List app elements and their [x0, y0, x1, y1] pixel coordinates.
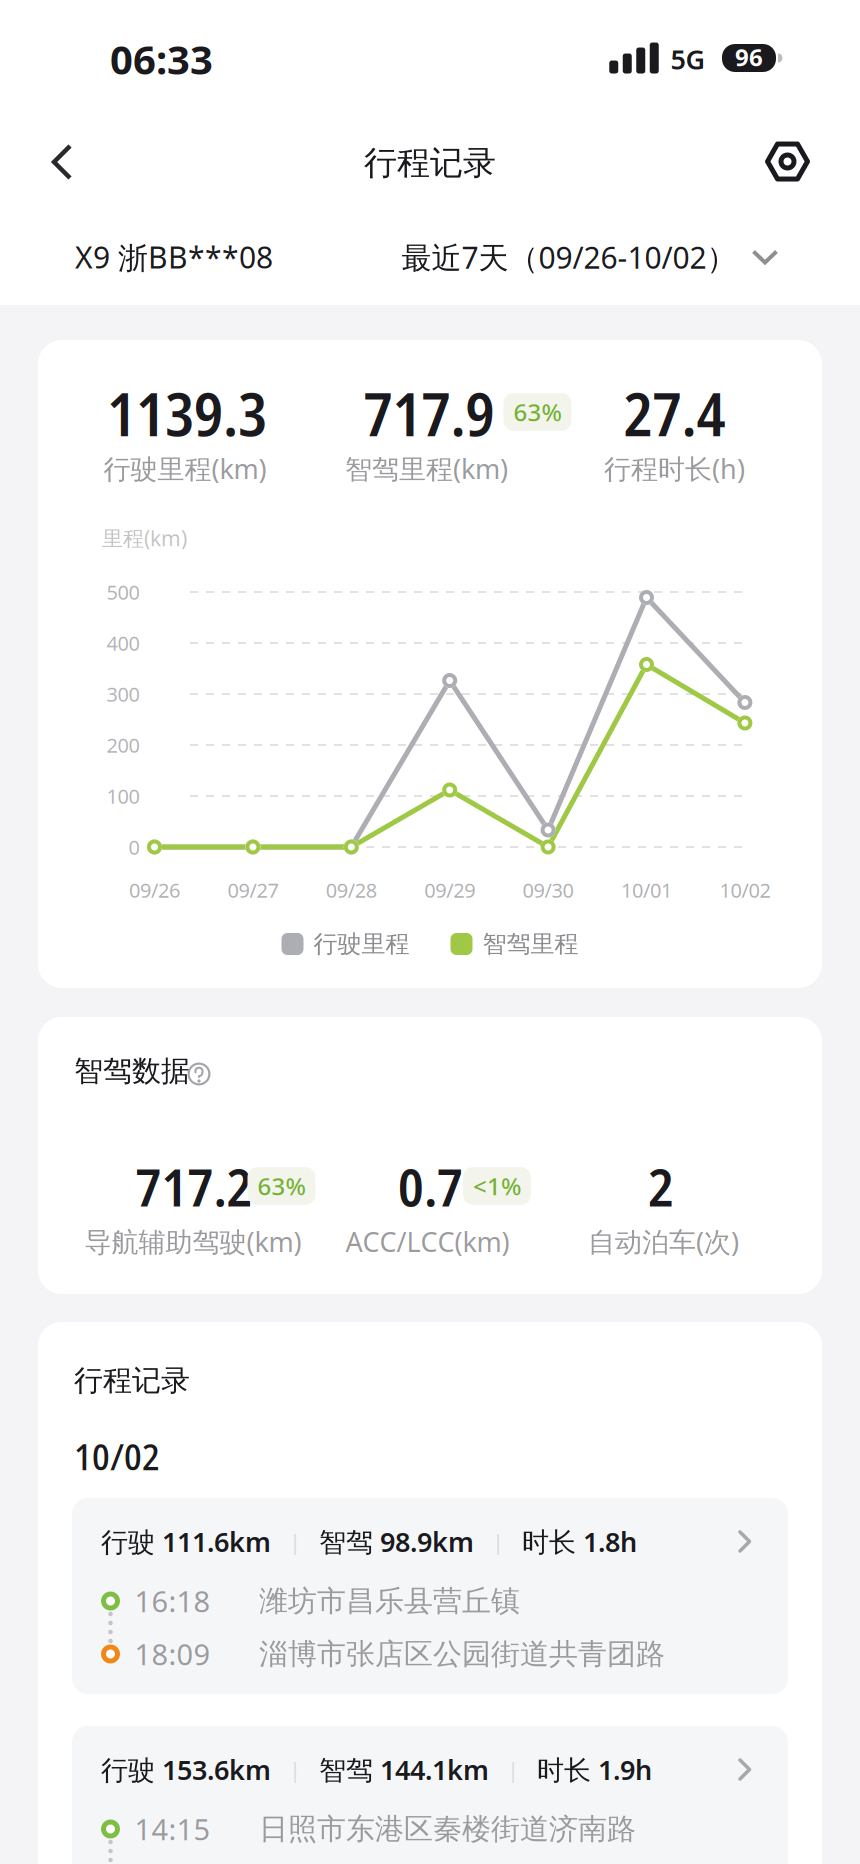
staticText: 100 — [106, 783, 139, 809]
staticText: 500 — [106, 579, 139, 605]
staticText: 行驶里程 — [313, 929, 409, 959]
staticText: 09/27 — [227, 877, 278, 903]
staticText: 时长 1.8h — [522, 1524, 637, 1559]
staticText: 5G — [670, 41, 705, 77]
button[interactable]: 行驶 111.6km — [72, 1498, 788, 1694]
staticText: 时长 1.9h — [537, 1752, 652, 1787]
staticText: 14:15 — [134, 1810, 210, 1848]
staticText: 300 — [106, 681, 139, 707]
staticText: 0.7 — [398, 1151, 463, 1221]
staticText: ACC/LCC(km) — [345, 1224, 509, 1259]
staticText: 行程记录 — [74, 1363, 190, 1398]
staticText: | — [289, 1755, 301, 1784]
staticText: 2 — [648, 1151, 674, 1221]
staticText: 潍坊市昌乐县营丘镇 — [259, 1583, 520, 1619]
button[interactable]: Back — [31, 131, 93, 193]
staticText: | — [289, 1527, 301, 1556]
staticText: <1% — [473, 1170, 521, 1202]
staticText: 717.2 — [135, 1151, 252, 1221]
staticText: 10/02 — [74, 1431, 160, 1480]
staticText: 智驾数据 — [74, 1053, 190, 1089]
staticText: 行驶里程(km) — [103, 451, 266, 486]
button[interactable]: About autopilot data — [186, 1061, 212, 1087]
staticText: 行程时长(h) — [604, 451, 745, 486]
staticText: 09/26 — [129, 877, 180, 903]
button[interactable]: 行驶 153.6km — [72, 1726, 788, 1864]
staticText: 行驶 111.6km — [101, 1524, 271, 1559]
staticText: 智驾里程 — [482, 929, 578, 959]
staticText: 最近7天（09/26-10/02） — [401, 237, 736, 277]
staticText: 10/01 — [621, 877, 672, 903]
staticText: 日照市东港区秦楼街道济南路 — [259, 1811, 636, 1847]
staticText: 09/30 — [523, 877, 574, 903]
staticText: 200 — [106, 732, 139, 758]
staticText: 自动泊车(次) — [588, 1224, 739, 1259]
staticText: 行驶 153.6km — [101, 1752, 271, 1787]
staticText: 16:18 — [134, 1582, 210, 1620]
staticText: 1139.3 — [107, 373, 267, 453]
staticText: 96 — [735, 41, 763, 73]
staticText: 智驾里程(km) — [345, 451, 508, 486]
button[interactable]: 最近7天（09/26-10/02） — [401, 235, 778, 279]
staticText: 18:09 — [134, 1635, 210, 1673]
button[interactable]: Settings — [756, 130, 818, 192]
staticText: 里程(km) — [102, 524, 187, 552]
staticText: 06:33 — [110, 32, 213, 85]
staticText: 0 — [128, 834, 139, 860]
staticText: | — [492, 1527, 504, 1556]
staticText: 淄博市张店区公园街道共青团路 — [259, 1636, 665, 1672]
staticText: 400 — [106, 630, 139, 656]
staticText: 09/28 — [326, 877, 377, 903]
staticText: 10/02 — [719, 877, 770, 903]
staticText: 导航辅助驾驶(km) — [84, 1224, 301, 1259]
staticText: 智驾 98.9km — [319, 1524, 474, 1559]
staticText: | — [507, 1755, 519, 1784]
staticText: X9 浙BB***08 — [75, 237, 273, 277]
staticText: 智驾 144.1km — [319, 1752, 489, 1787]
staticText: 63% — [257, 1170, 305, 1202]
staticText: 27.4 — [623, 373, 725, 453]
staticText: 09/29 — [424, 877, 475, 903]
staticText: 63% — [513, 396, 561, 428]
button[interactable]: X9 浙BB***08 — [75, 235, 315, 279]
staticText: 行程记录 — [364, 143, 496, 183]
staticText: 717.9 — [363, 373, 494, 453]
